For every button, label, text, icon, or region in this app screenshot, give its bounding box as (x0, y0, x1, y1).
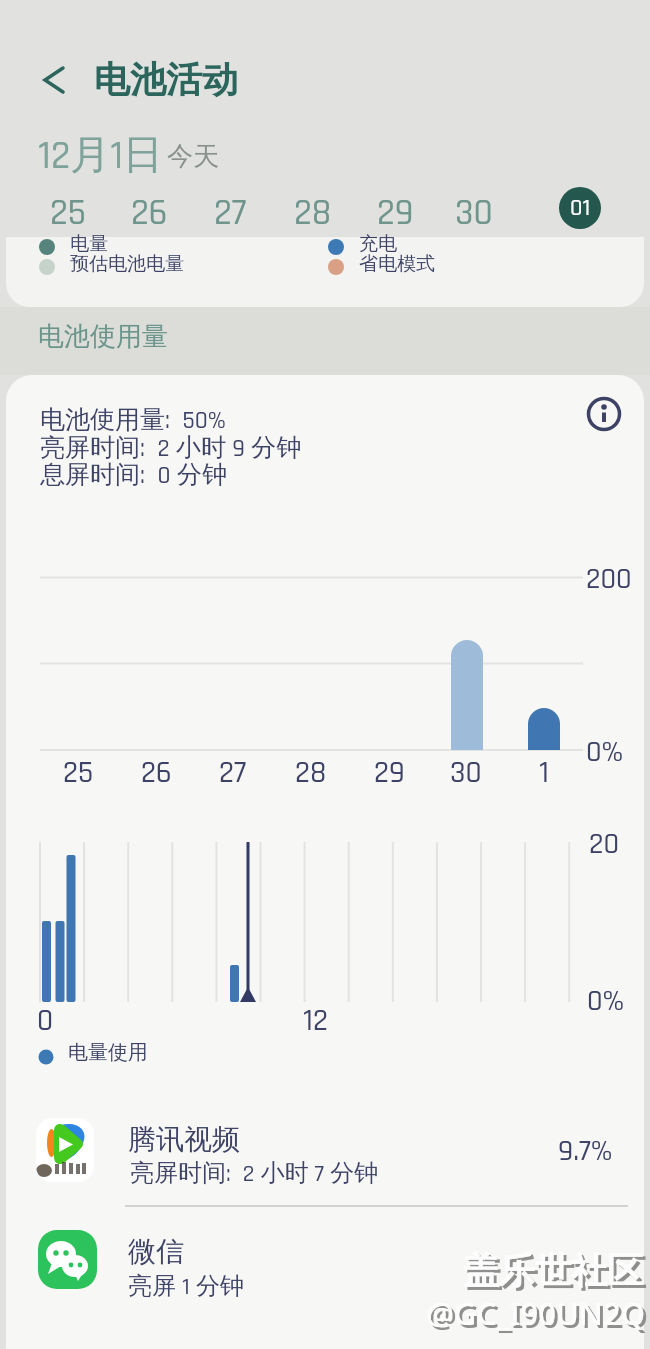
staticText: 25 (63, 753, 94, 789)
staticText: 26 (131, 190, 168, 232)
button[interactable]: 腾讯视频 (6, 1106, 644, 1200)
staticText: 预估电池电量 (70, 252, 184, 276)
staticText: 28 (294, 190, 332, 232)
staticText: 电池使用量: 50% (40, 404, 226, 437)
button[interactable] (580, 390, 628, 438)
button[interactable]: 30 (444, 190, 504, 232)
button[interactable]: 29 (365, 190, 425, 232)
staticText: 28 (295, 753, 327, 789)
staticText: 电池活动 (94, 57, 238, 102)
staticText: 200 (586, 560, 632, 598)
staticText: 9.7% (558, 1132, 613, 1170)
staticText: 省电模式 (359, 252, 435, 276)
button[interactable] (32, 56, 78, 102)
staticText: 29 (377, 190, 414, 232)
staticText: 0 (37, 1001, 54, 1037)
staticText: @GC_I90UN2Q (429, 1295, 648, 1337)
staticText: 30 (455, 190, 493, 232)
staticText: 27 (214, 190, 247, 232)
staticText: 20 (589, 825, 620, 863)
staticText: 29 (374, 753, 405, 789)
staticText: 0% (587, 982, 625, 1020)
staticText: 25 (50, 190, 86, 232)
button[interactable]: 28 (283, 190, 343, 232)
button[interactable]: 26 (119, 190, 179, 232)
staticText: 01 (570, 193, 591, 224)
staticText: 电量 (70, 232, 108, 256)
staticText: 腾讯视频 (128, 1122, 240, 1157)
staticText: 1 (539, 753, 549, 789)
staticText: 12 (303, 1001, 328, 1037)
button[interactable]: 27 (200, 190, 260, 232)
staticText: 电量使用 (68, 1040, 148, 1065)
staticText: 0% (586, 733, 624, 771)
staticText: 27 (219, 753, 247, 789)
staticText: 微信 (128, 1234, 184, 1269)
staticText: 26 (141, 753, 172, 789)
staticText: 亮屏时间: 2 小时 9 分钟 (40, 432, 302, 465)
button[interactable]: 01 (559, 187, 601, 229)
staticText: @GC_I90UN2Q (426, 1292, 645, 1334)
staticText: 30 (450, 753, 482, 789)
staticText: 亮屏时间: 2 小时 7 分钟 (130, 1158, 379, 1189)
staticText: 盖乐世社区 (466, 1251, 646, 1296)
staticText: 12月1日 (38, 129, 164, 181)
staticText: 亮屏 1 分钟 (128, 1271, 244, 1302)
staticText: 电池使用量 (38, 320, 168, 353)
staticText: 今天 (167, 140, 219, 173)
staticText: 充电 (359, 232, 397, 256)
staticText: 盖乐世社区 (463, 1248, 643, 1293)
button[interactable]: 25 (38, 190, 98, 232)
staticText: 息屏时间: 0 分钟 (40, 459, 227, 492)
button[interactable]: 微信 (6, 1218, 644, 1312)
